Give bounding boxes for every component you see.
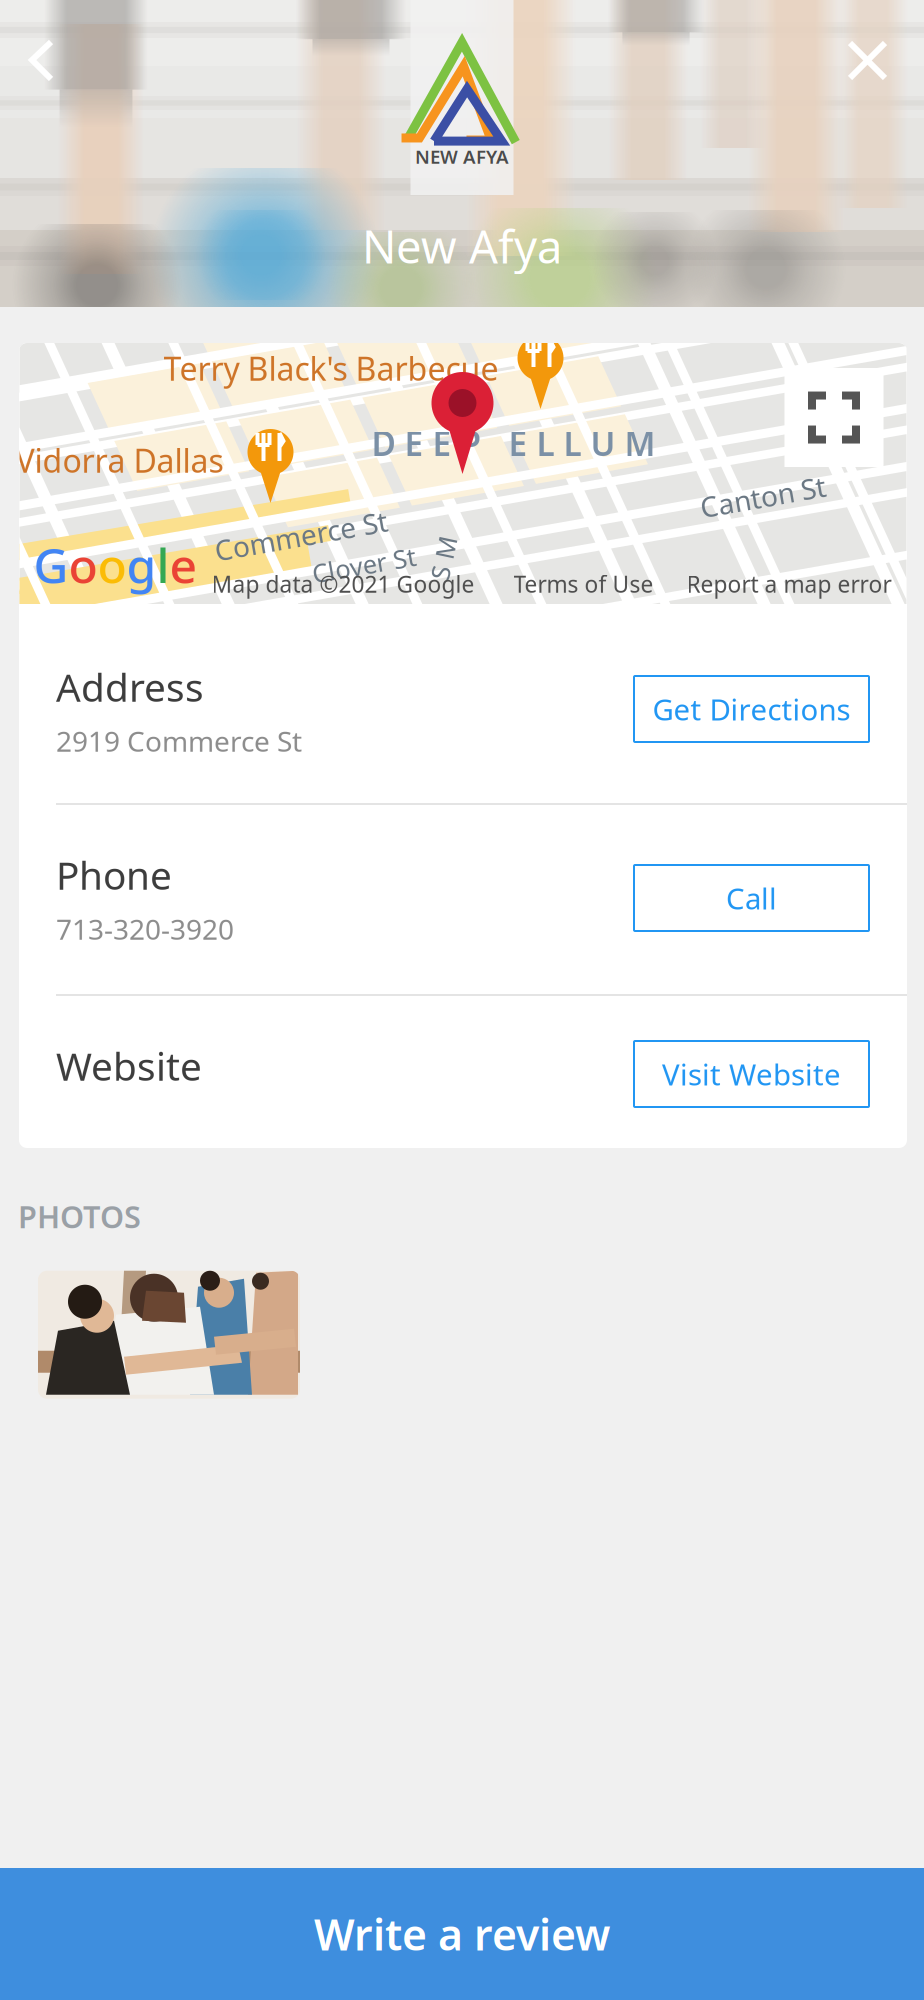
staticText: l bbox=[156, 533, 169, 597]
staticText: Commerce St bbox=[213, 517, 388, 554]
staticText: Get Directions bbox=[652, 689, 850, 728]
staticText: G bbox=[33, 533, 68, 597]
staticText: Canton St bbox=[699, 478, 826, 515]
staticText: PHOTOS bbox=[18, 1196, 141, 1237]
staticText: e bbox=[169, 533, 197, 597]
staticText: Report a map error bbox=[686, 569, 891, 599]
staticText: 713-320-3920 bbox=[56, 910, 234, 947]
staticText: Call bbox=[726, 878, 777, 917]
button[interactable]: Photo bbox=[38, 1271, 300, 1399]
staticText: S M bbox=[421, 541, 465, 575]
staticText: New Afya bbox=[362, 216, 562, 276]
staticText: Terms of Use bbox=[513, 569, 653, 599]
button[interactable]: Write a review bbox=[0, 1868, 924, 2000]
staticText: Visit Website bbox=[662, 1054, 841, 1093]
staticText: NEW AFYA bbox=[415, 144, 509, 169]
staticText: D E E P E L L U M bbox=[371, 421, 655, 465]
staticText: Map data ©2021 Google bbox=[211, 569, 474, 599]
staticText: Phone bbox=[56, 849, 172, 900]
button[interactable]: Call bbox=[634, 865, 869, 931]
staticText: o bbox=[68, 533, 97, 597]
staticText: g bbox=[126, 533, 156, 597]
staticText: Address bbox=[56, 661, 204, 712]
button[interactable]: Back bbox=[16, 27, 67, 94]
staticText: Vidorra Dallas bbox=[15, 439, 223, 481]
button[interactable]: Expand map bbox=[784, 368, 883, 467]
button[interactable]: Get Directions bbox=[634, 676, 869, 742]
staticText: Website bbox=[56, 1040, 202, 1091]
staticText: Clover St bbox=[311, 548, 416, 582]
staticText: Write a review bbox=[314, 1906, 610, 1962]
staticText: o bbox=[97, 533, 126, 597]
button[interactable]: Close bbox=[835, 28, 900, 93]
staticText: 2919 Commerce St bbox=[56, 722, 302, 759]
button[interactable]: Visit Website bbox=[634, 1041, 869, 1107]
staticText: Terry Black's Barbecue bbox=[163, 347, 498, 389]
